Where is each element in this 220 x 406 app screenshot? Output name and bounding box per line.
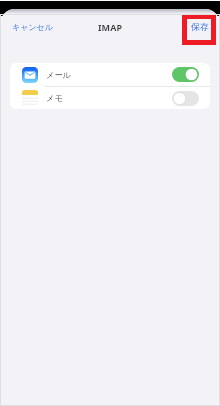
staticText: メール [46, 70, 71, 80]
button[interactable]: メール [10, 63, 210, 86]
staticText: 保存 [191, 21, 209, 32]
button[interactable]: キャンセル [0, 9, 59, 44]
staticText: キャンセル [12, 22, 53, 32]
button[interactable]: 保存 [185, 9, 220, 44]
button[interactable]: Off [172, 91, 199, 106]
staticText: IMAP [98, 21, 123, 33]
staticText: メモ [46, 93, 63, 103]
button[interactable]: メモ [10, 87, 210, 109]
button[interactable]: On [172, 67, 199, 82]
